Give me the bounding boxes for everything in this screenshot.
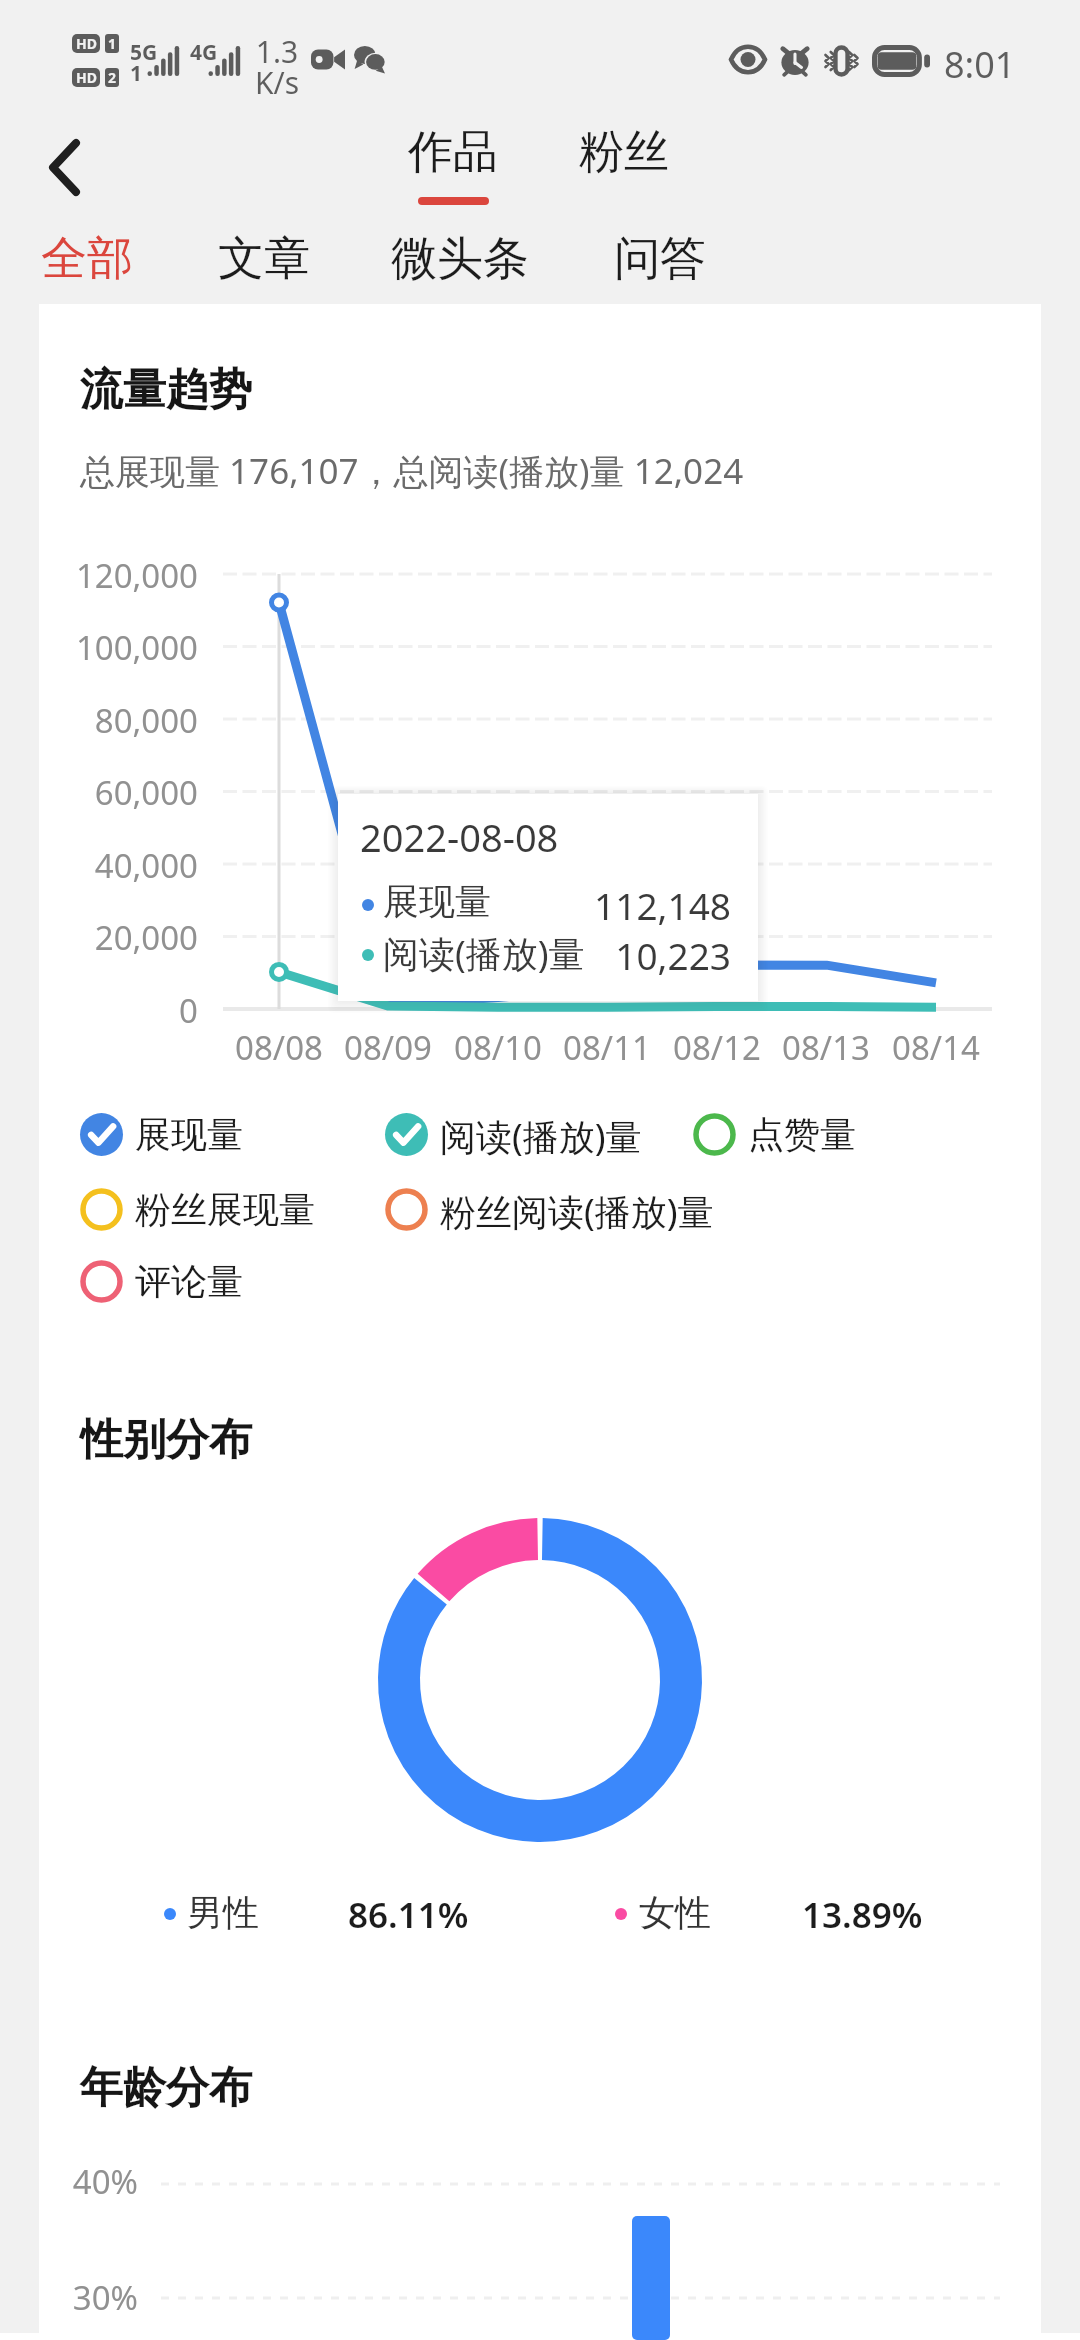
staticText: 60,000 — [0, 770, 198, 815]
staticText: 08/12 — [652, 1025, 782, 1070]
staticText: 粉丝阅读(播放)量 — [440, 1187, 714, 1231]
staticText: 阅读(播放)量 — [383, 929, 585, 978]
button[interactable]: 粉丝阅读(播放)量 — [385, 1187, 714, 1231]
staticText: 10,223 — [511, 930, 731, 980]
staticText: 男性 — [187, 1890, 259, 1935]
staticText: 2 — [108, 68, 117, 87]
button[interactable]: 微头条 — [375, 214, 513, 298]
staticText: 100,000 — [0, 625, 198, 670]
staticText: 40,000 — [0, 843, 198, 888]
button[interactable]: 点赞量 — [693, 1112, 856, 1156]
button[interactable]: Back — [17, 120, 111, 214]
staticText: 全部 — [41, 230, 133, 288]
button[interactable]: 作品 — [396, 112, 514, 210]
button[interactable]: 问答 — [598, 214, 690, 298]
staticText: 2022-08-08 — [360, 811, 559, 863]
button[interactable]: 评论量 — [80, 1259, 243, 1303]
staticText: 08/10 — [433, 1025, 563, 1070]
staticText: 评论量 — [135, 1259, 243, 1303]
staticText: 40% — [0, 2159, 138, 2204]
staticText: 1.3 — [237, 31, 317, 72]
staticText: 阅读(播放)量 — [440, 1112, 642, 1156]
staticText: 问答 — [614, 230, 706, 288]
staticText: 13.89% — [802, 1891, 923, 1939]
staticText: 粉丝 — [579, 124, 669, 181]
staticText: HD — [76, 34, 97, 53]
staticText: 08/11 — [542, 1025, 672, 1070]
staticText: 流量趋势 — [80, 363, 252, 417]
button[interactable]: 粉丝 — [566, 112, 684, 198]
staticText: 20,000 — [0, 915, 198, 960]
staticText: 粉丝展现量 — [135, 1187, 315, 1231]
staticText: 08/14 — [871, 1025, 1001, 1070]
staticText: 8:01 — [944, 40, 1016, 89]
staticText: HD — [76, 68, 97, 87]
staticText: 女性 — [639, 1890, 711, 1935]
staticText: 08/08 — [214, 1025, 344, 1070]
staticText: 08/13 — [761, 1025, 891, 1070]
staticText: 120,000 — [0, 553, 198, 598]
staticText: 5G — [130, 38, 158, 67]
staticText: 86.11% — [348, 1891, 469, 1939]
staticText: 微头条 — [391, 230, 529, 288]
staticText: 0 — [0, 988, 198, 1033]
button[interactable]: 阅读(播放)量 — [385, 1112, 642, 1156]
staticText: K/s — [237, 62, 317, 103]
staticText: 1 — [130, 59, 143, 88]
staticText: 80,000 — [0, 698, 198, 743]
staticText: 展现量 — [135, 1112, 243, 1156]
button[interactable]: 粉丝展现量 — [80, 1187, 315, 1231]
staticText: 展现量 — [383, 879, 491, 924]
staticText: 作品 — [408, 124, 498, 181]
staticText: 08/09 — [323, 1025, 453, 1070]
staticText: 1 — [108, 34, 117, 53]
staticText: 112,148 — [511, 880, 731, 930]
staticText: 点赞量 — [748, 1112, 856, 1156]
staticText: 性别分布 — [80, 1413, 252, 1467]
button[interactable]: 全部 — [25, 214, 117, 298]
button[interactable]: 文章 — [202, 214, 294, 298]
staticText: 文章 — [218, 230, 310, 288]
staticText: 30% — [0, 2275, 138, 2320]
button[interactable]: 展现量 — [80, 1112, 243, 1156]
staticText: 总展现量 176,107，总阅读(播放)量 12,024 — [80, 447, 744, 495]
staticText: 4G — [190, 38, 218, 67]
staticText: 年龄分布 — [80, 2061, 252, 2115]
